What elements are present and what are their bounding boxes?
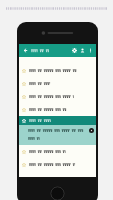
button[interactable]	[19, 145, 96, 158]
button[interactable]: Back	[21, 46, 30, 55]
button[interactable]: Account	[78, 44, 86, 57]
button[interactable]: More options	[86, 44, 94, 57]
button[interactable]	[19, 90, 96, 103]
button[interactable]	[19, 64, 96, 77]
button[interactable]: Settings	[70, 44, 78, 57]
button[interactable]	[19, 103, 96, 116]
button[interactable]	[19, 158, 96, 171]
button[interactable]: Options	[19, 116, 96, 145]
button[interactable]: Options	[89, 128, 94, 133]
button[interactable]	[19, 77, 96, 90]
